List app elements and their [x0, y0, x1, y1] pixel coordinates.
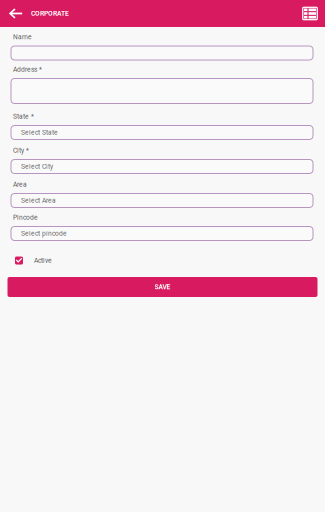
staticText: Active	[34, 257, 52, 264]
staticText: Select State	[21, 129, 58, 136]
staticText: Select pincode	[21, 230, 67, 237]
staticText: City *	[13, 146, 29, 154]
button[interactable]: List view	[295, 0, 325, 27]
staticText: Select Area	[21, 197, 56, 204]
staticText: Area	[13, 180, 27, 188]
staticText: Address *	[13, 65, 42, 73]
staticText: Name	[13, 33, 32, 41]
button[interactable]: Active	[11, 240, 313, 264]
staticText: Pincode	[13, 213, 38, 221]
staticText: SAVE	[154, 283, 170, 291]
button[interactable]: Back	[0, 0, 31, 27]
staticText: State *	[13, 112, 34, 120]
staticText: CORPORATE	[31, 10, 69, 17]
staticText: Select City	[21, 163, 53, 170]
button[interactable]: SAVE	[7, 277, 317, 297]
